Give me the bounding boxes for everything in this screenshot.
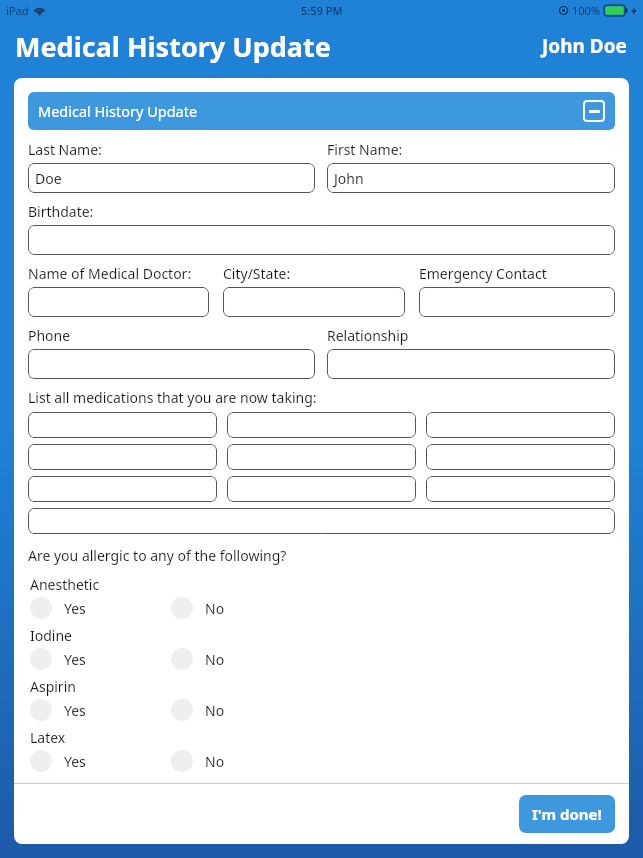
button[interactable]: Collapse section — [583, 100, 605, 122]
button[interactable]: Yes — [30, 648, 171, 670]
button[interactable] — [327, 349, 615, 379]
button[interactable]: No — [171, 750, 331, 772]
button[interactable]: Yes — [30, 699, 171, 721]
staticText: I'm done! — [532, 804, 602, 824]
staticText: No — [205, 701, 225, 720]
button[interactable] — [419, 287, 615, 317]
button[interactable] — [223, 287, 405, 317]
button[interactable]: No — [171, 597, 331, 619]
staticText: 100% — [572, 3, 601, 18]
button[interactable] — [28, 508, 615, 534]
staticText: iPad — [6, 3, 29, 18]
staticText: Birthdate: — [28, 202, 94, 221]
button[interactable] — [28, 444, 217, 470]
button[interactable]: John — [327, 163, 615, 193]
staticText: 5:59 PM — [301, 3, 343, 18]
staticText: Phone — [28, 326, 71, 345]
button[interactable] — [426, 412, 615, 438]
button[interactable] — [426, 444, 615, 470]
button[interactable]: No — [171, 648, 331, 670]
button[interactable]: No — [171, 699, 331, 721]
button[interactable]: I'm done! — [519, 795, 615, 833]
button[interactable]: Medical History Update — [28, 92, 615, 130]
staticText: Relationship — [327, 326, 409, 345]
staticText: No — [205, 752, 225, 771]
button[interactable] — [227, 444, 416, 470]
button[interactable]: Doe — [28, 163, 315, 193]
staticText: Medical History Update — [38, 101, 198, 121]
button[interactable] — [28, 287, 209, 317]
button[interactable] — [28, 349, 315, 379]
button[interactable] — [227, 412, 416, 438]
staticText: Name of Medical Doctor: — [28, 264, 192, 283]
button[interactable] — [426, 476, 615, 502]
staticText: No — [205, 650, 225, 669]
staticText: Emergency Contact — [419, 264, 547, 283]
staticText: Are you allergic to any of the following… — [28, 546, 287, 565]
staticText: Medical History Update — [15, 28, 331, 65]
button[interactable] — [28, 476, 217, 502]
button[interactable]: John Doe — [542, 33, 627, 59]
staticText: Yes — [64, 599, 86, 618]
button[interactable] — [28, 412, 217, 438]
staticText: No — [205, 599, 225, 618]
button[interactable] — [227, 476, 416, 502]
button[interactable]: Yes — [30, 750, 171, 772]
staticText: City/State: — [223, 264, 291, 283]
staticText: Yes — [64, 752, 86, 771]
staticText: Doe — [35, 169, 62, 188]
staticText: Iodine — [30, 626, 72, 645]
staticText: Latex — [30, 728, 66, 747]
staticText: Aspirin — [30, 677, 76, 696]
staticText: Anesthetic — [30, 575, 100, 594]
button[interactable] — [28, 225, 615, 255]
staticText: List all medications that you are now ta… — [28, 388, 317, 407]
staticText: John — [334, 169, 364, 188]
staticText: Yes — [64, 701, 86, 720]
staticText: Last Name: — [28, 140, 102, 159]
staticText: First Name: — [327, 140, 403, 159]
staticText: Yes — [64, 650, 86, 669]
button[interactable]: Yes — [30, 597, 171, 619]
